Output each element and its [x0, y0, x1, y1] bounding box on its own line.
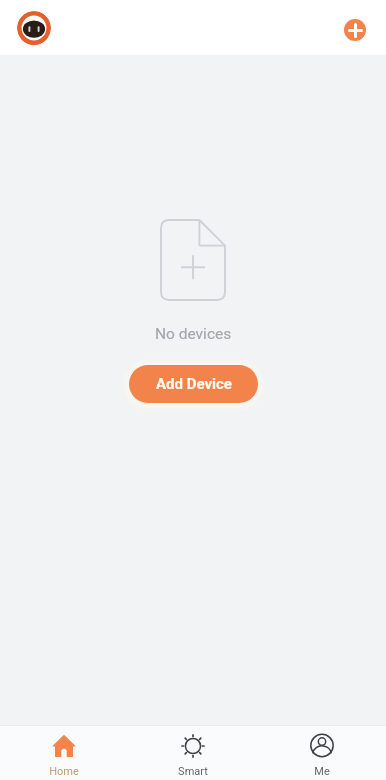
- staticText: Add Device: [156, 375, 232, 393]
- staticText: Home: [49, 765, 79, 778]
- staticText: Me: [314, 765, 330, 778]
- staticText: Smart: [178, 765, 208, 778]
- button[interactable]: Smart: [128, 725, 257, 780]
- button[interactable]: Home: [0, 725, 128, 780]
- button[interactable]: Logo: [17, 11, 51, 45]
- button[interactable]: Me: [257, 725, 386, 780]
- staticText: No devices: [155, 325, 232, 343]
- button[interactable]: Add device: [344, 19, 366, 41]
- button[interactable]: Add Device: [129, 365, 258, 403]
